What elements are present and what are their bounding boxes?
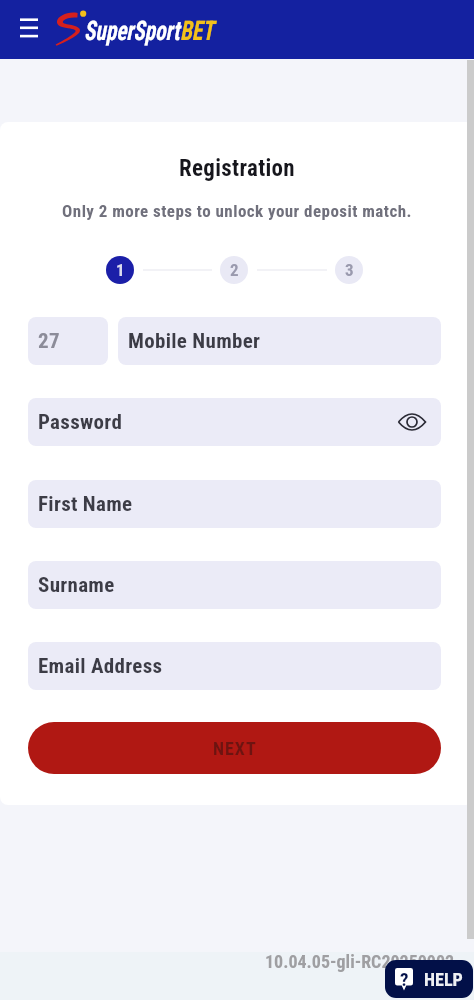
staticText: Registration (0, 155, 474, 182)
staticText: 10.04.05-gli-RC20250902 (265, 951, 455, 972)
button[interactable]: First Name (28, 480, 441, 528)
staticText: First Name (38, 492, 133, 517)
button[interactable]: 1 (106, 256, 134, 284)
button[interactable]: Surname (28, 561, 441, 609)
button[interactable]: Password (28, 398, 441, 446)
button[interactable]: Mobile Number (118, 317, 441, 365)
button[interactable]: 27 (28, 317, 108, 365)
button[interactable]: Email Address (28, 642, 441, 690)
staticText: BET (180, 15, 214, 47)
staticText: SuperSport (84, 15, 180, 47)
staticText: HELP (424, 969, 463, 990)
staticText: 27 (38, 329, 60, 354)
staticText: Email Address (38, 654, 163, 679)
staticText: NEXT (213, 738, 257, 759)
button[interactable]: Menu (13, 14, 45, 46)
staticText: Mobile Number (128, 329, 261, 354)
button[interactable]: Show password (396, 406, 428, 438)
button[interactable]: ? (385, 960, 473, 998)
button[interactable]: 2 (220, 256, 248, 284)
staticText: Password (38, 410, 123, 435)
staticText: 1 (116, 260, 125, 280)
button[interactable]: NEXT (28, 722, 441, 774)
staticText: Only 2 more steps to unlock your deposit… (0, 201, 474, 221)
staticText: 3 (345, 260, 354, 280)
staticText: ? (400, 968, 409, 990)
button[interactable]: 3 (335, 256, 363, 284)
staticText: Surname (38, 573, 115, 598)
staticText: 2 (230, 260, 239, 280)
